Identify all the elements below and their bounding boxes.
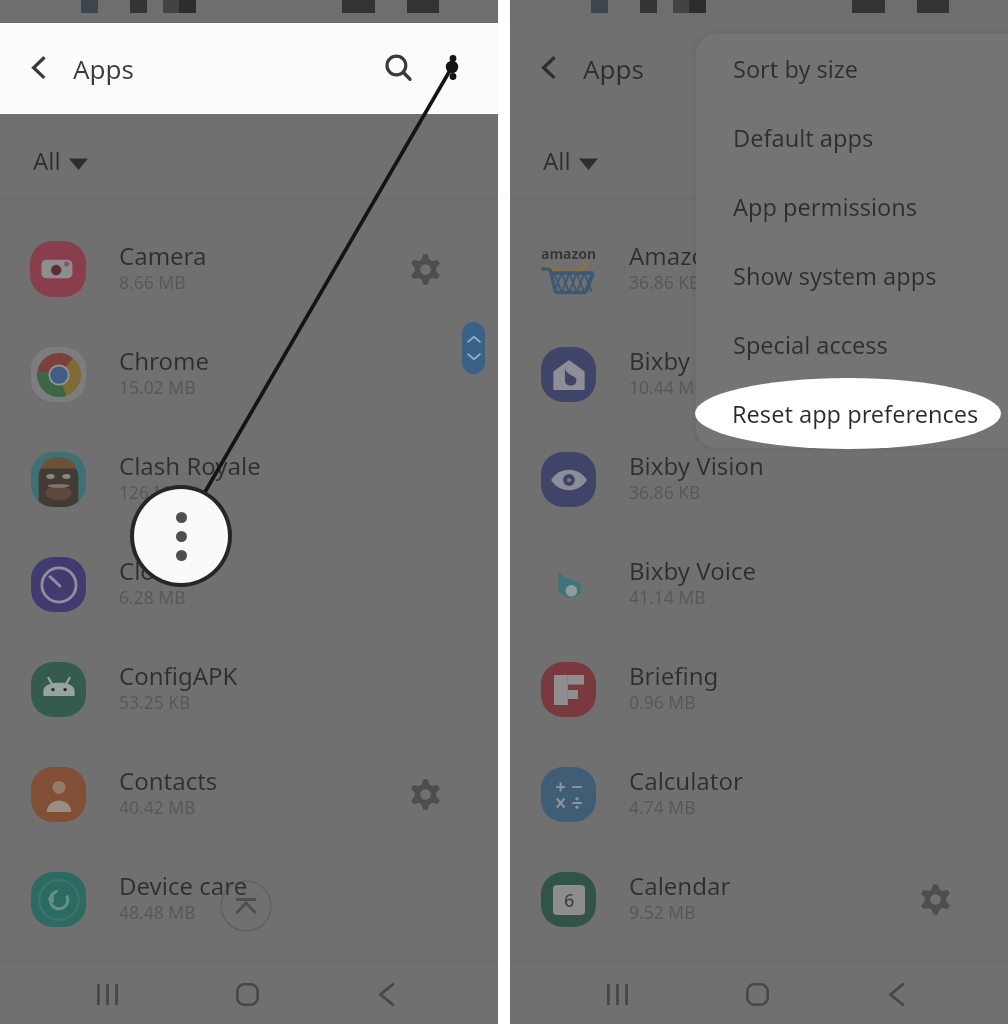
button[interactable]: Settings — [405, 249, 445, 289]
button[interactable]: Recents — [85, 972, 129, 1016]
staticText: Show system apps — [733, 260, 937, 292]
button[interactable]: Contacts — [0, 735, 498, 840]
staticText: Briefing — [629, 659, 719, 692]
staticText: 4.74 MB — [629, 795, 696, 819]
button[interactable]: Back — [875, 972, 919, 1016]
button[interactable]: All — [0, 114, 498, 197]
staticText: Bixby — [629, 344, 691, 377]
button[interactable]: Briefing — [510, 630, 1008, 735]
staticText: Clash Royale — [119, 449, 261, 482]
button[interactable]: Settings — [915, 879, 955, 919]
button[interactable]: Bixby — [510, 315, 1008, 420]
button[interactable]: Chrome — [0, 315, 498, 420]
staticText: 6.28 MB — [119, 585, 186, 609]
button[interactable]: Reset app preferences — [696, 379, 1008, 448]
button[interactable]: Bixby Vision — [510, 420, 1008, 525]
staticText: Reset app preferences — [732, 398, 979, 430]
button[interactable]: Device care — [0, 840, 498, 945]
staticText: amazon — [541, 244, 597, 263]
button[interactable]: All — [510, 114, 1008, 197]
staticText: Calendar — [629, 869, 731, 902]
staticText: 6 — [564, 888, 575, 913]
staticText: 41.14 MB — [629, 585, 706, 609]
button[interactable]: Recents — [595, 972, 639, 1016]
button[interactable]: Home — [735, 972, 779, 1016]
staticText: Chrome — [119, 344, 209, 377]
button[interactable]: App permissions — [696, 172, 1008, 241]
staticText: Contacts — [119, 764, 218, 797]
staticText: Reset app preferences — [733, 398, 980, 430]
button[interactable]: More options — [431, 43, 475, 87]
staticText: App permissions — [733, 191, 918, 223]
staticText: Device care — [119, 869, 248, 902]
button[interactable]: Home — [225, 972, 269, 1016]
button[interactable]: Default apps — [696, 103, 1008, 172]
staticText: ConfigAPK — [119, 659, 238, 692]
button[interactable]: Scroll to top — [220, 880, 272, 932]
button[interactable]: Bixby Voice — [510, 525, 1008, 630]
button[interactable]: amazon — [510, 210, 1008, 315]
staticText: 48.48 MB — [119, 900, 196, 924]
staticText: 53.25 KB — [119, 690, 191, 714]
staticText: 15.02 MB — [119, 375, 196, 399]
button[interactable]: Back — [526, 43, 570, 87]
staticText: Camera — [119, 239, 207, 272]
staticText: Special access — [733, 329, 888, 361]
staticText: Bixby Vision — [629, 449, 764, 482]
button[interactable]: Sort by size — [696, 34, 1008, 103]
staticText: Default apps — [733, 122, 874, 154]
button[interactable]: Back — [16, 43, 60, 87]
button[interactable]: Clock — [0, 525, 498, 630]
staticText: 0.96 MB — [629, 690, 696, 714]
staticText: Apps — [583, 51, 645, 86]
button[interactable]: Special access — [696, 310, 1008, 379]
staticText: Amazon — [629, 239, 721, 272]
staticText: Clock — [119, 554, 180, 587]
button[interactable]: Camera — [0, 210, 498, 315]
staticText: 126 MB — [119, 480, 181, 504]
staticText: Bixby Voice — [629, 554, 756, 587]
staticText: 36.86 KB — [629, 480, 701, 504]
button[interactable]: Back — [365, 972, 409, 1016]
staticText: Sort by size — [733, 53, 859, 85]
button[interactable]: 6 — [510, 840, 1008, 945]
staticText: All — [33, 144, 61, 177]
staticText: 9.52 MB — [629, 900, 696, 924]
button[interactable]: Clash Royale — [0, 420, 498, 525]
button[interactable]: Show system apps — [696, 241, 1008, 310]
button[interactable]: ConfigAPK — [0, 630, 498, 735]
button[interactable]: Settings — [405, 774, 445, 814]
button[interactable]: Calculator — [510, 735, 1008, 840]
staticText: Calculator — [629, 764, 743, 797]
staticText: 8.66 MB — [119, 270, 186, 294]
button[interactable]: Search — [374, 43, 418, 87]
staticText: 10.44 MB — [629, 375, 706, 399]
staticText: 36.86 KB — [629, 270, 701, 294]
staticText: All — [543, 144, 571, 177]
staticText: Apps — [73, 51, 135, 86]
staticText: 40.42 MB — [119, 795, 196, 819]
button[interactable]: Scroll — [462, 322, 485, 374]
button[interactable]: More options — [134, 489, 228, 583]
